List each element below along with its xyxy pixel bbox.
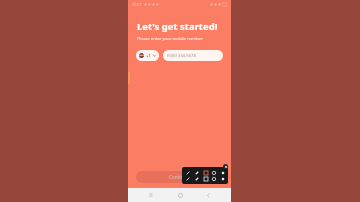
button[interactable]: Undo: [184, 176, 191, 182]
button[interactable]: Shape: [210, 169, 217, 176]
button[interactable]: +1: [136, 50, 159, 61]
button[interactable]: Redo: [193, 176, 200, 182]
staticText: 17:57: [132, 2, 142, 7]
button[interactable]: Sticker: [210, 176, 217, 182]
button[interactable]: (500) 234-5678: [163, 50, 223, 61]
button[interactable]: Continue: [136, 171, 223, 183]
button[interactable]: Home: [174, 189, 186, 201]
button[interactable]: Eraser: [219, 169, 226, 176]
button[interactable]: More: [219, 176, 226, 182]
button[interactable]: Close toolbar: [223, 164, 228, 169]
button[interactable]: Color: [202, 176, 209, 182]
staticText: Please enter your mobile number: [137, 36, 203, 42]
staticText: Continue: [169, 174, 190, 180]
button[interactable]: Crop: [202, 169, 209, 176]
staticText: (500) 234-5678: [167, 53, 196, 59]
staticText: +1: [146, 53, 151, 59]
button[interactable]: Recent apps: [145, 189, 157, 201]
button[interactable]: Back: [202, 189, 214, 201]
button[interactable]: Pen: [184, 169, 191, 176]
staticText: Let's get started!: [137, 20, 218, 33]
button[interactable]: Highlighter: [193, 169, 200, 176]
